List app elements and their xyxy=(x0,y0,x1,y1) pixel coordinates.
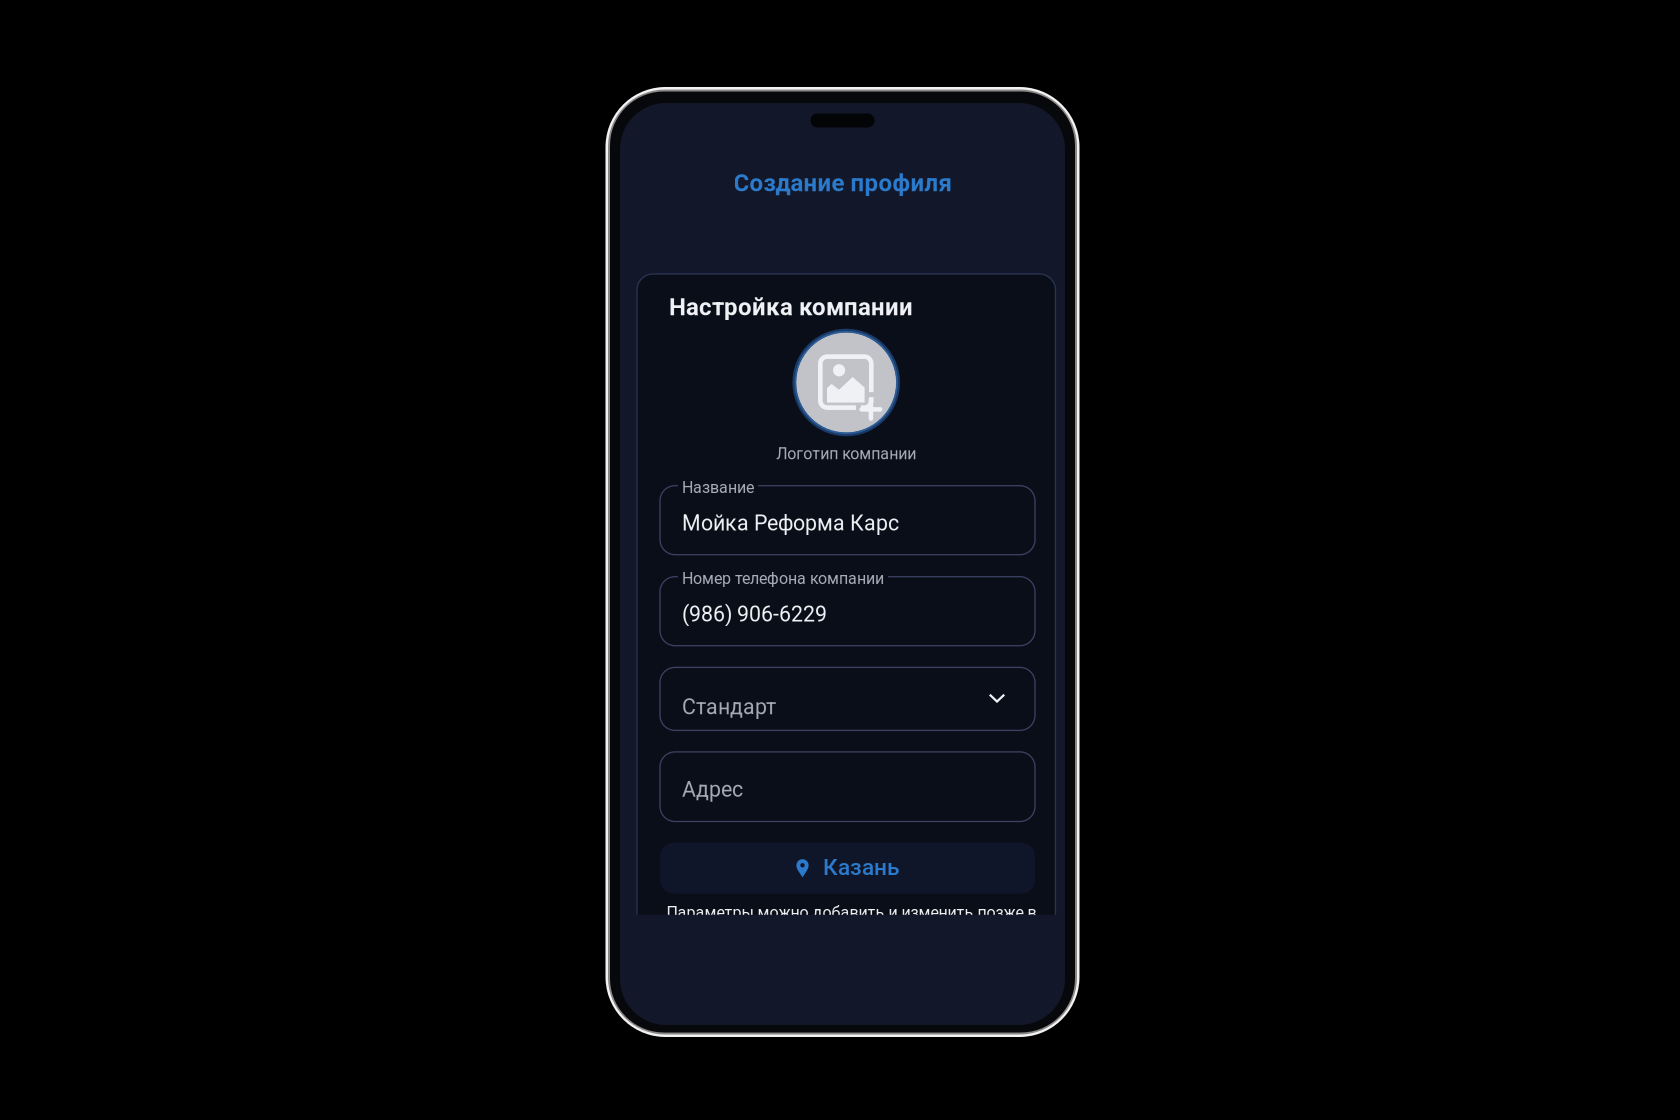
staticText: Номер телефона компании xyxy=(682,569,884,588)
staticText: (986) 906-6229 xyxy=(682,602,827,627)
button[interactable]: Стандарт xyxy=(660,667,1035,730)
staticText: Мойка Реформа Карс xyxy=(682,511,899,536)
staticText: Логотип компании xyxy=(776,444,916,463)
button[interactable]: Добавить логотип компании xyxy=(794,330,898,434)
button[interactable]: Казань xyxy=(660,843,1035,894)
staticText: Стандарт xyxy=(682,694,776,719)
staticText: Казань xyxy=(823,854,899,880)
button[interactable]: Адрес xyxy=(660,752,1035,821)
staticText: Адрес xyxy=(682,777,743,802)
staticText: Настройка компании xyxy=(669,293,913,321)
button[interactable]: Номер телефона компании xyxy=(660,577,1035,646)
staticText: Создание профиля xyxy=(733,169,951,197)
staticText: Параметры можно добавить и изменить позж… xyxy=(666,903,1036,922)
staticText: Название xyxy=(682,478,754,497)
button[interactable]: Название xyxy=(660,486,1035,555)
